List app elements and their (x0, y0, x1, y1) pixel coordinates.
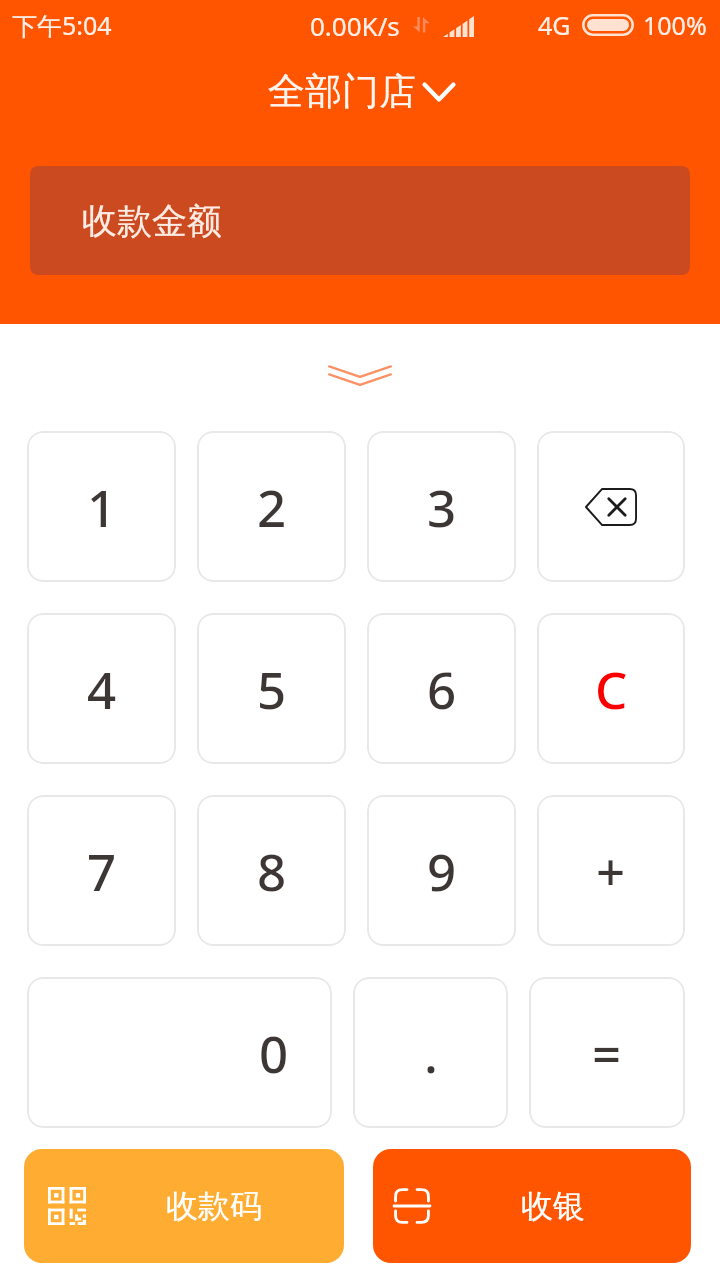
staticText: 收款码 (166, 1186, 262, 1226)
button[interactable]: 0 (27, 977, 332, 1128)
button[interactable]: 收银 (373, 1149, 691, 1263)
button[interactable]: Backspace (537, 431, 685, 582)
staticText: = (592, 1018, 622, 1087)
button[interactable]: 3 (367, 431, 516, 582)
staticText: 9 (427, 836, 457, 905)
staticText: 4 (87, 654, 117, 723)
button[interactable]: 收款码 (24, 1149, 344, 1263)
staticText: 0 (259, 1018, 289, 1087)
staticText: 100% (643, 8, 707, 42)
staticText: . (424, 1018, 438, 1087)
staticText: 收银 (521, 1186, 585, 1226)
button[interactable]: 1 (27, 431, 176, 582)
staticText: 收款金额 (82, 199, 222, 243)
button[interactable]: 8 (197, 795, 346, 946)
button[interactable]: C (537, 613, 685, 764)
staticText: 4G (538, 8, 571, 42)
button[interactable]: Collapse keypad (328, 358, 392, 398)
staticText: + (596, 836, 626, 905)
staticText: 0.00K/s (310, 8, 400, 43)
button[interactable]: 7 (27, 795, 176, 946)
button[interactable]: = (529, 977, 685, 1128)
button[interactable]: 5 (197, 613, 346, 764)
staticText: C (595, 654, 628, 723)
button[interactable]: 9 (367, 795, 516, 946)
button[interactable]: 收款金额 (30, 166, 690, 275)
staticText: 6 (427, 654, 457, 723)
staticText: 全部门店 (268, 68, 416, 115)
staticText: 1 (87, 472, 117, 541)
button[interactable]: . (353, 977, 508, 1128)
staticText: 3 (427, 472, 457, 541)
staticText: 8 (257, 836, 287, 905)
staticText: 2 (257, 472, 287, 541)
staticText: 7 (87, 836, 117, 905)
button[interactable]: 6 (367, 613, 516, 764)
button[interactable]: 2 (197, 431, 346, 582)
button[interactable]: + (537, 795, 685, 946)
button[interactable]: 全部门店 (260, 64, 462, 119)
button[interactable]: 4 (27, 613, 176, 764)
staticText: 下午5:04 (12, 8, 112, 42)
staticText: 5 (257, 654, 287, 723)
